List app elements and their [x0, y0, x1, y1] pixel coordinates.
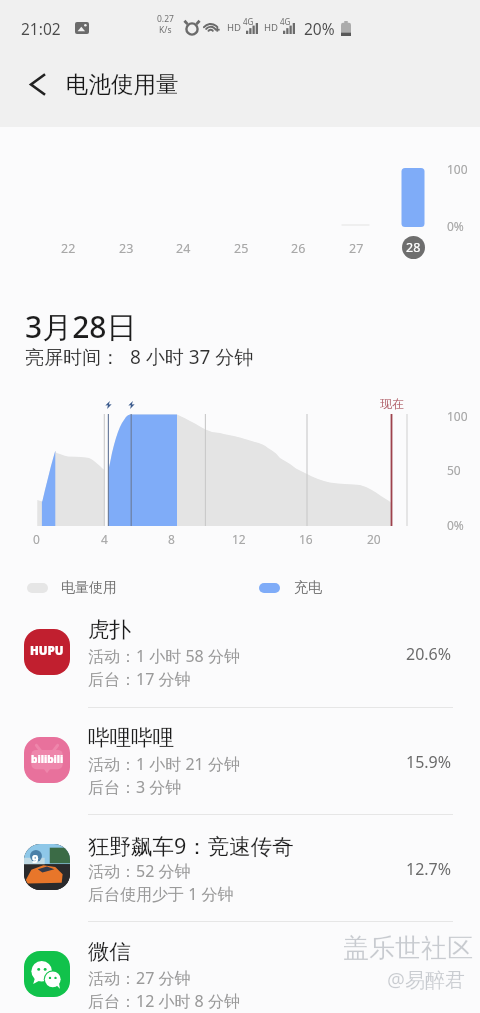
- staticText: 20: [367, 531, 381, 547]
- staticText: 0%: [447, 517, 464, 533]
- staticText: 活动：1 小时 58 分钟: [88, 645, 240, 667]
- staticText: 22: [61, 240, 76, 257]
- staticText: 后台：3 分钟: [88, 776, 182, 798]
- button[interactable]: 微信: [0, 921, 480, 1013]
- staticText: 3月28日: [25, 306, 137, 347]
- staticText: 后台：17 分钟: [88, 668, 191, 690]
- staticText: 盖乐世社区: [343, 932, 473, 965]
- staticText: 后台：12 小时 8 分钟: [88, 990, 240, 1012]
- staticText: 充电: [294, 579, 322, 597]
- staticText: 100: [447, 408, 468, 424]
- staticText: 8: [168, 531, 175, 547]
- staticText: K/s: [159, 24, 172, 36]
- staticText: HD: [264, 21, 278, 34]
- button[interactable]: 9: [0, 814, 480, 921]
- staticText: 现在: [380, 396, 404, 411]
- staticText: 微信: [88, 938, 131, 965]
- staticText: 12.7%: [406, 858, 452, 880]
- staticText: 电池使用量: [66, 70, 179, 98]
- staticText: 哔哩哔哩: [88, 724, 174, 751]
- staticText: 0%: [447, 218, 464, 234]
- staticText: 23: [119, 240, 134, 257]
- staticText: 亮屏时间： 8 小时 37 分钟: [25, 344, 254, 370]
- staticText: 0.27: [157, 13, 174, 25]
- staticText: 50: [447, 462, 461, 478]
- staticText: 0: [33, 531, 40, 547]
- staticText: 27: [349, 240, 364, 257]
- staticText: 4: [101, 531, 108, 547]
- staticText: 狂野飙车9：竞速传奇: [88, 831, 294, 860]
- staticText: @易醉君: [387, 966, 465, 993]
- staticText: 20%: [304, 18, 335, 39]
- staticText: 15.9%: [406, 751, 452, 773]
- staticText: 21:02: [21, 18, 61, 39]
- staticText: 12: [232, 531, 246, 547]
- staticText: 100: [447, 161, 468, 177]
- button[interactable]: HUPU: [0, 600, 480, 707]
- staticText: HD: [227, 21, 241, 34]
- staticText: 25: [234, 240, 249, 257]
- staticText: 16: [299, 531, 313, 547]
- staticText: 9: [32, 851, 39, 866]
- staticText: 4G: [280, 16, 291, 27]
- button[interactable]: Back: [10, 57, 64, 111]
- staticText: 20.6%: [406, 643, 452, 665]
- staticText: 活动：1 小时 21 分钟: [88, 753, 240, 775]
- staticText: HUPU: [30, 643, 64, 659]
- staticText: 24: [176, 240, 191, 257]
- staticText: 26: [291, 240, 306, 257]
- staticText: 虎扑: [88, 616, 131, 643]
- button[interactable]: bilibili: [0, 707, 480, 814]
- staticText: 28: [406, 239, 421, 256]
- staticText: bilibili: [31, 752, 64, 766]
- staticText: 活动：52 分钟: [88, 860, 191, 882]
- staticText: 活动：27 分钟: [88, 967, 191, 989]
- staticText: 后台使用少于 1 分钟: [88, 883, 234, 905]
- staticText: 电量使用: [61, 579, 117, 597]
- staticText: 4G: [243, 16, 254, 27]
